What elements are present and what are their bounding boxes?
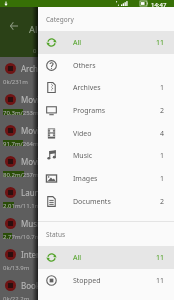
staticText: Video	[73, 129, 92, 139]
staticText: 14:47	[151, 1, 167, 8]
staticText: Images	[73, 174, 98, 184]
staticText: 11	[156, 276, 165, 286]
staticText: 1	[160, 151, 165, 161]
staticText: Stopped	[73, 276, 101, 286]
staticText: Movies3.zip	[21, 156, 65, 167]
button[interactable]: Programs	[38, 99, 174, 122]
staticText: Archives	[73, 83, 101, 93]
button[interactable]: Archives	[38, 76, 174, 99]
staticText: All	[73, 38, 82, 48]
staticText: Status	[46, 230, 66, 239]
button[interactable]: Images	[38, 167, 174, 190]
button[interactable]: Stopped	[38, 269, 174, 292]
staticText: All	[73, 253, 82, 263]
staticText: Music	[73, 151, 93, 161]
staticText: 2	[160, 197, 165, 207]
staticText: 0k/13.9m	[3, 264, 30, 272]
staticText: Others	[73, 61, 96, 71]
staticText: Bookmark	[21, 280, 60, 291]
button[interactable]: Back	[5, 17, 22, 34]
staticText: 14:47	[151, 1, 167, 8]
staticText: 11	[156, 38, 165, 48]
staticText: 1	[160, 174, 165, 184]
button[interactable]: All	[38, 246, 174, 269]
staticText: Launcher.apk	[21, 187, 71, 198]
staticText: 0k/22.2m	[3, 295, 30, 300]
staticText: 2.01m/11.1m	[3, 202, 41, 210]
staticText: 91.7m/264m	[3, 140, 39, 148]
button[interactable]: Music	[38, 144, 174, 167]
staticText: 0 ACTIVE · 8 TOTAL	[33, 47, 86, 55]
staticText: All downloads	[29, 23, 92, 36]
staticText: 2.77m/10.7m	[3, 233, 41, 241]
staticText: Music.zip	[21, 218, 56, 229]
staticText: Movies2.zip	[21, 125, 65, 136]
staticText: 2	[160, 106, 165, 116]
staticText: 11	[156, 253, 165, 263]
staticText: 4	[160, 129, 165, 139]
staticText: 80.2m/257m	[3, 171, 39, 179]
button[interactable]: Video	[38, 122, 174, 145]
staticText: Archives	[21, 63, 53, 74]
button[interactable]: Others	[38, 54, 174, 77]
staticText: Internet.apk	[21, 249, 68, 260]
staticText: 1	[160, 83, 165, 93]
staticText: Programs	[73, 106, 106, 116]
staticText: 70.3m/253m	[3, 109, 39, 117]
button[interactable]: All	[38, 31, 174, 54]
staticText: Movies.zip	[21, 94, 61, 105]
staticText: 0k/231m	[3, 78, 28, 86]
staticText: Documents	[73, 197, 111, 207]
staticText: Category	[46, 15, 74, 24]
button[interactable]: Documents	[38, 190, 174, 213]
